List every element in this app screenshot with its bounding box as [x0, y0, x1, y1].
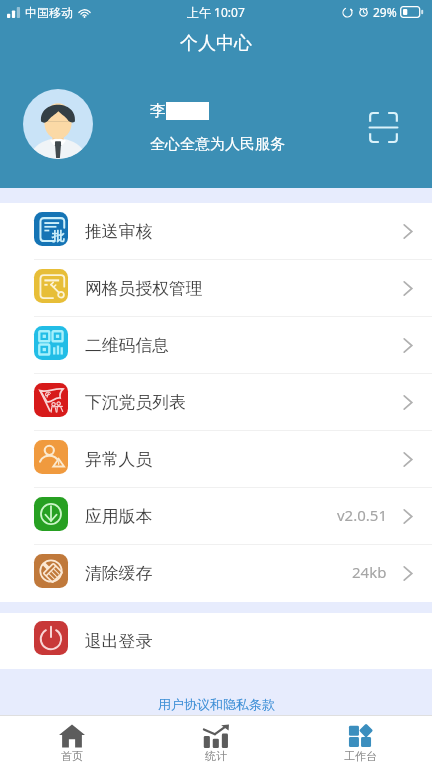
staticText: 统计 — [205, 749, 227, 763]
staticText: 清除缓存 — [85, 563, 153, 584]
button[interactable]: 首页 — [0, 716, 144, 768]
staticText: 用户协议和隐私条款 — [158, 696, 275, 712]
staticText: 24kb — [352, 562, 387, 582]
button[interactable]: 应用版本 — [0, 488, 432, 545]
staticText: 异常人员 — [85, 449, 153, 470]
staticText: 李 — [150, 101, 166, 121]
staticText: 二维码信息 — [85, 335, 169, 356]
button[interactable]: 扫一扫 — [363, 107, 403, 147]
button[interactable]: 用户协议和隐私条款 — [0, 693, 432, 715]
button[interactable]: 退出登录 — [0, 613, 432, 669]
button[interactable]: 下沉党员列表 — [0, 374, 432, 431]
staticText: 下沉党员列表 — [85, 392, 186, 413]
button[interactable]: 异常人员 — [0, 431, 432, 488]
button[interactable]: 清除缓存 — [0, 545, 432, 602]
button[interactable]: 网格员授权管理 — [0, 260, 432, 317]
staticText: 上午 10:07 — [187, 4, 245, 20]
button[interactable]: 二维码信息 — [0, 317, 432, 374]
staticText: 首页 — [61, 749, 83, 763]
button[interactable]: 工作台 — [288, 716, 432, 768]
staticText: 个人中心 — [180, 32, 252, 55]
staticText: 批 — [52, 228, 65, 244]
staticText: 全心全意为人民服务 — [150, 135, 285, 154]
staticText: 网格员授权管理 — [85, 278, 203, 299]
staticText: 中国移动 — [25, 5, 73, 20]
button[interactable]: 统计 — [144, 716, 288, 768]
staticText: 29% — [373, 4, 397, 20]
staticText: 退出登录 — [85, 631, 153, 652]
button[interactable]: 批 — [0, 203, 432, 260]
staticText: v2.0.51 — [337, 505, 387, 525]
staticText: 工作台 — [344, 749, 377, 763]
staticText: 推送审核 — [85, 221, 153, 242]
staticText: 应用版本 — [85, 506, 153, 527]
